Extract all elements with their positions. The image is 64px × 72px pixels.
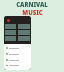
staticText: MUSIC [22,9,43,17]
staticText: CARNIVAL [16,1,48,9]
